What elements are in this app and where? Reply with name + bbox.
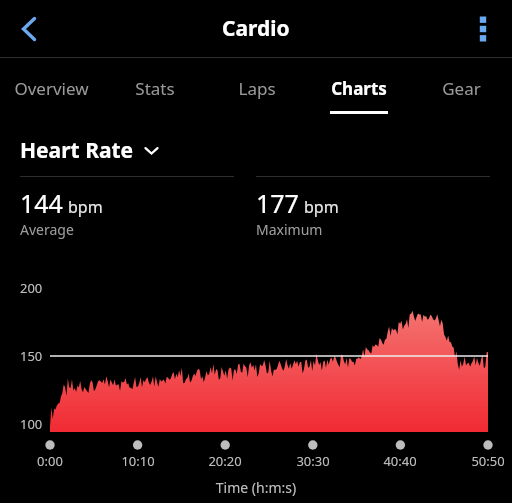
button[interactable]: Charts bbox=[308, 58, 410, 118]
button[interactable]: More options bbox=[460, 6, 506, 52]
staticText: 177 bbox=[256, 186, 299, 220]
staticText: 30:30 bbox=[287, 452, 339, 470]
staticText: Laps bbox=[238, 77, 276, 100]
staticText: Overview bbox=[14, 77, 89, 100]
staticText: 144 bbox=[20, 186, 63, 220]
staticText: 20:20 bbox=[199, 452, 251, 470]
button[interactable]: Laps bbox=[206, 58, 308, 118]
staticText: bpm bbox=[68, 196, 103, 218]
staticText: Maximum bbox=[256, 220, 323, 239]
button[interactable]: Back bbox=[6, 6, 52, 52]
staticText: Average bbox=[20, 220, 74, 239]
staticText: 200 bbox=[20, 279, 43, 297]
staticText: Cardio bbox=[222, 14, 290, 43]
staticText: 100 bbox=[20, 415, 43, 433]
staticText: bpm bbox=[304, 196, 339, 218]
staticText: 10:10 bbox=[112, 452, 164, 470]
staticText: Stats bbox=[135, 77, 175, 100]
button[interactable]: Stats bbox=[103, 58, 206, 118]
staticText: 40:40 bbox=[374, 452, 426, 470]
staticText: Charts bbox=[331, 77, 387, 100]
staticText: Gear bbox=[442, 77, 481, 100]
button[interactable]: Heart Rate bbox=[20, 136, 160, 165]
staticText: 50:50 bbox=[462, 452, 512, 470]
staticText: 0:00 bbox=[24, 452, 76, 470]
staticText: Heart Rate bbox=[20, 136, 134, 165]
staticText: 150 bbox=[20, 347, 43, 365]
button[interactable]: Gear bbox=[410, 58, 512, 118]
button[interactable]: Overview bbox=[0, 58, 103, 118]
staticText: Time (h:m:s) bbox=[0, 478, 512, 497]
